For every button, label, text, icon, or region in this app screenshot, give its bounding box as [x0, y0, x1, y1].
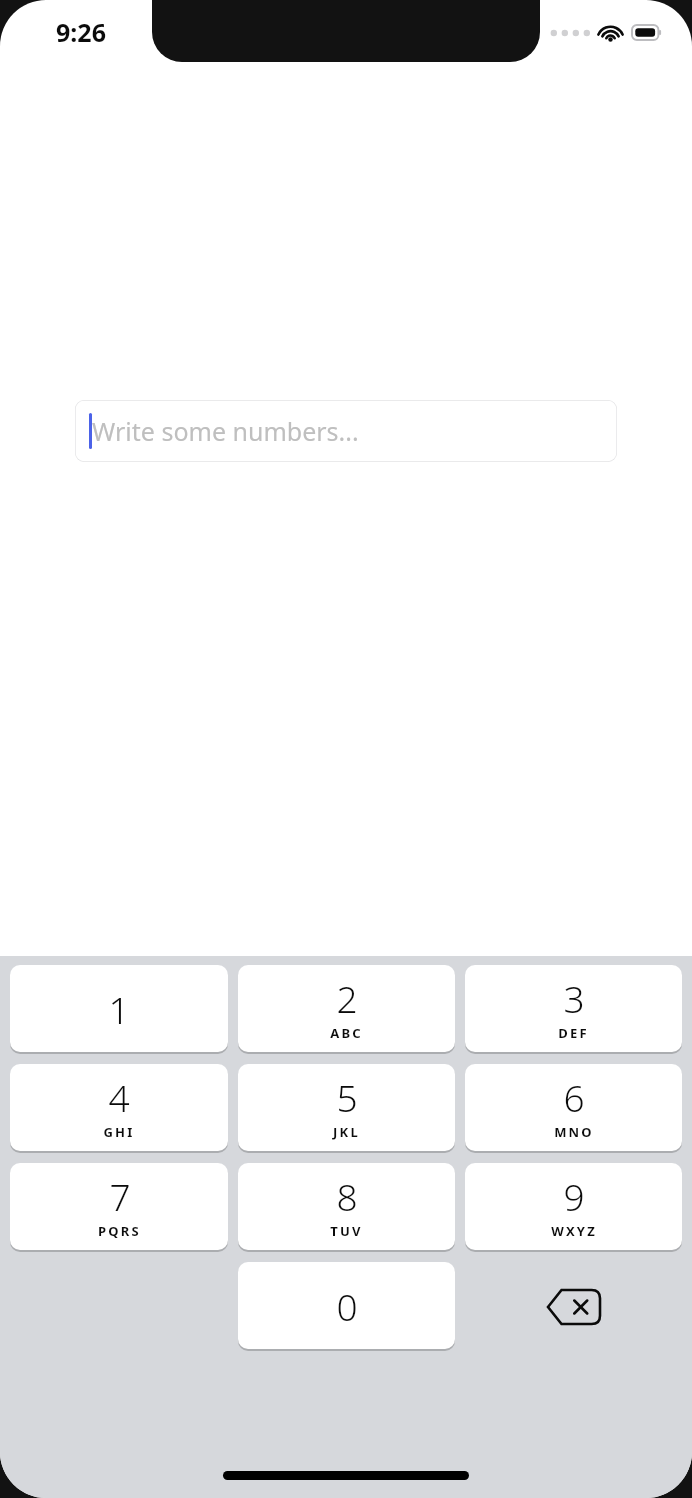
staticText: 0: [336, 1281, 358, 1331]
staticText: 1: [108, 984, 130, 1034]
button[interactable]: Delete: [465, 1262, 682, 1351]
button[interactable]: 8: [238, 1163, 455, 1250]
staticText: Write some numbers...: [92, 414, 359, 448]
staticText: 3: [563, 973, 585, 1023]
button[interactable]: 0: [238, 1262, 455, 1349]
staticText: GHI: [103, 1123, 135, 1141]
staticText: 2: [336, 973, 358, 1023]
button[interactable]: 7: [10, 1163, 228, 1250]
staticText: PQRS: [98, 1222, 141, 1240]
staticText: 8: [336, 1171, 358, 1221]
staticText: 5: [336, 1072, 358, 1122]
staticText: WXYZ: [551, 1222, 597, 1240]
staticText: ABC: [330, 1024, 363, 1042]
button[interactable]: 9: [465, 1163, 682, 1250]
button[interactable]: 6: [465, 1064, 682, 1151]
staticText: TUV: [330, 1222, 363, 1240]
button[interactable]: 2: [238, 965, 455, 1052]
staticText: JKL: [333, 1123, 360, 1141]
staticText: 6: [563, 1072, 585, 1122]
staticText: 9: [563, 1171, 585, 1221]
button[interactable]: Write some numbers...: [75, 400, 617, 462]
staticText: 7: [109, 1171, 131, 1221]
button[interactable]: 5: [238, 1064, 455, 1151]
button[interactable]: 3: [465, 965, 682, 1052]
staticText: 4: [108, 1072, 130, 1122]
staticText: 9:26: [56, 15, 106, 49]
staticText: MNO: [554, 1123, 594, 1141]
button[interactable]: 1: [10, 965, 228, 1052]
staticText: DEF: [558, 1024, 589, 1042]
button[interactable]: 4: [10, 1064, 228, 1151]
